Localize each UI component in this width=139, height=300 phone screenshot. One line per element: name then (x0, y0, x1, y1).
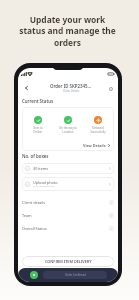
button[interactable]: Order Confirmed (43, 271, 107, 279)
staticText: On the way to Location (59, 126, 77, 133)
button[interactable]: Back (21, 83, 31, 93)
staticText: Upload photo (33, 180, 58, 185)
staticText: Order ID SKP2345... (50, 83, 92, 89)
staticText: View Details (83, 143, 106, 148)
button[interactable]: Client details (22, 196, 114, 209)
button[interactable]: 30 items (22, 163, 114, 174)
button[interactable]: View Details (82, 142, 111, 149)
staticText: Order Confirmed (65, 273, 86, 277)
button[interactable]: CONFIRM ITEM DELIVERY (22, 256, 114, 267)
staticText: Team (22, 213, 32, 218)
staticText: Overall Status (22, 226, 47, 231)
staticText: Order Details (63, 89, 80, 93)
button[interactable]: Support (106, 84, 115, 93)
staticText: Onboard Successfully (90, 126, 106, 133)
staticText: CONFIRM ITEM DELIVERY (45, 259, 92, 264)
staticText: Update your work status and manage the o… (12, 14, 123, 49)
staticText: Current Status (22, 98, 54, 104)
button[interactable]: Team (22, 209, 114, 222)
button[interactable]: Upload photo (22, 177, 114, 191)
staticText: Client details (22, 200, 45, 205)
staticText: No. of boxes (22, 153, 49, 159)
staticText: Complete verification (33, 185, 55, 188)
staticText: 30 items (33, 166, 49, 171)
button[interactable]: Call (30, 271, 38, 279)
staticText: Item to Deliver (33, 126, 43, 133)
button[interactable]: Overall Status (22, 222, 114, 235)
